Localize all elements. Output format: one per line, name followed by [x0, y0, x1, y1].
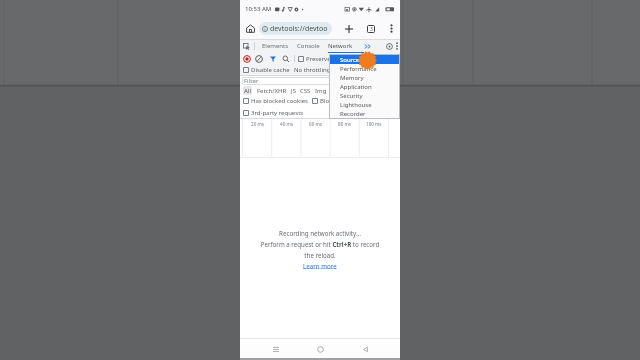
staticText: Disable cache [251, 66, 290, 74]
staticText: Lighthouse [340, 101, 372, 109]
button[interactable] [312, 98, 318, 104]
staticText: Application [340, 83, 372, 91]
button[interactable]: Back [356, 340, 374, 358]
staticText: 80 ms [338, 121, 351, 127]
button[interactable]: Recorder [329, 109, 400, 118]
staticText: Performance [340, 65, 377, 73]
staticText: Filter [244, 77, 259, 85]
button[interactable]: CSS [300, 87, 311, 95]
button[interactable]: No throttling [294, 66, 331, 74]
button[interactable]: Search [282, 55, 290, 63]
button[interactable] [243, 98, 249, 104]
staticText: Sources [340, 56, 363, 64]
staticText: Recording network activity… [279, 229, 361, 237]
button[interactable]: More panels [364, 43, 371, 50]
button[interactable]: Elements [262, 42, 289, 50]
button[interactable]: Console [297, 42, 320, 50]
button[interactable] [243, 110, 249, 116]
staticText: Security [340, 92, 363, 100]
button[interactable]: Lighthouse [329, 100, 400, 109]
button[interactable]: Learn more [303, 262, 337, 270]
staticText: Blocked [320, 97, 343, 105]
staticText: Network [328, 42, 353, 50]
staticText: 20 ms [251, 121, 264, 127]
button[interactable]: Security [329, 91, 400, 100]
staticText: Preserve log [306, 55, 341, 63]
other: Touch point [358, 51, 377, 70]
button[interactable]: Switch tabs [364, 22, 377, 35]
button[interactable]: Home [311, 340, 329, 358]
staticText: 10:53 AM [245, 5, 272, 13]
button[interactable]: Performance [329, 64, 400, 73]
button[interactable] [298, 56, 304, 62]
button[interactable]: Home [244, 22, 257, 35]
staticText: 40 ms [280, 121, 293, 127]
button[interactable]: New tab [342, 22, 355, 35]
staticText: Has blocked cookies [251, 97, 308, 105]
button[interactable]: Settings [385, 42, 394, 51]
staticText: All [244, 87, 251, 95]
button[interactable]: Clear [255, 55, 263, 63]
button[interactable]: More options [386, 23, 397, 34]
staticText: Memory [340, 74, 364, 82]
button[interactable]: DevTools menu [395, 42, 399, 50]
staticText: 60 ms [309, 121, 322, 127]
button[interactable]: Filter [269, 55, 277, 63]
button[interactable]: Filter [242, 77, 388, 85]
button[interactable]: Sources [329, 55, 400, 64]
button[interactable]: JS [291, 87, 296, 95]
staticText: Perform a request or hit Ctrl+R to recor… [257, 240, 383, 260]
staticText: 3rd-party requests [251, 109, 304, 117]
button[interactable]: Fetch/XHR [257, 87, 287, 95]
staticText: devtools://devtoo [270, 24, 328, 34]
staticText: Recorder [340, 110, 366, 118]
button[interactable]: Inspect element [242, 42, 251, 51]
button[interactable]: Application [329, 82, 400, 91]
button[interactable]: Recent apps [267, 340, 285, 358]
button[interactable]: Network [328, 39, 364, 53]
staticText: 3 [370, 26, 373, 33]
button[interactable]: Img [315, 87, 327, 95]
button[interactable]: Memory [329, 73, 400, 82]
button[interactable]: Stop recording [243, 55, 251, 63]
button[interactable] [243, 67, 249, 73]
staticText: 100 ms [366, 121, 382, 127]
button[interactable]: All [243, 86, 252, 95]
button[interactable]: devtools://devtoo [259, 22, 332, 35]
